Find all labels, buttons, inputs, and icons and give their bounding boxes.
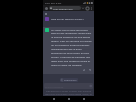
staticText: Send a message... — [45, 85, 66, 88]
button[interactable]: More options — [90, 7, 93, 10]
staticText: chat.openai.com — [53, 7, 73, 10]
button[interactable]: Share — [81, 6, 85, 10]
staticText: 9:26 jeu. 6 juil. — [45, 1, 62, 4]
staticText: Free Research Preview. ChatGPT may produ… — [44, 90, 93, 96]
button[interactable]: Tabs — [85, 6, 90, 11]
button[interactable]: Back — [49, 96, 58, 102]
staticText: Le "blog" est un type de format web qui … — [51, 28, 92, 66]
button[interactable]: Menu — [44, 12, 48, 16]
button[interactable]: Account — [44, 6, 49, 11]
button[interactable]: Give me an idea for a blog ? — [43, 16, 94, 27]
button[interactable]: Recent apps — [79, 96, 88, 102]
button[interactable]: Dislike — [88, 68, 92, 72]
button[interactable]: Like — [82, 68, 86, 72]
button[interactable]: Regenerate — [60, 78, 78, 82]
staticText: Give me an idea for a blog ? — [51, 17, 84, 20]
button[interactable]: Home — [64, 96, 73, 102]
staticText: Regenerate — [64, 79, 77, 81]
button[interactable]: chat.openai.com — [49, 6, 81, 10]
